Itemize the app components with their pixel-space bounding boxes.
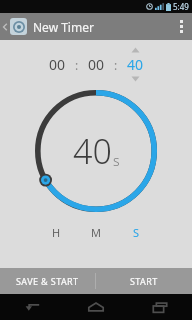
button[interactable]: H [46,223,66,241]
button[interactable]: Recent apps [128,294,192,320]
staticText: START [130,275,158,287]
button[interactable]: Timer dial, 40 seconds [33,88,159,214]
button[interactable]: 00 [83,47,109,82]
button[interactable]: START [96,268,192,294]
button[interactable]: SAVE & START [0,268,95,294]
staticText: SAVE & START [16,275,79,287]
button[interactable]: Home [64,294,128,320]
button[interactable]: 40 [122,47,148,82]
button[interactable]: Navigate up, New Timer [2,13,94,40]
staticText: s [113,151,120,170]
staticText: : [75,57,79,73]
button[interactable]: 00 [44,47,70,82]
staticText: : [114,57,118,73]
staticText: S [133,225,140,240]
staticText: 40 [127,55,144,74]
button[interactable]: S [126,223,146,241]
staticText: M [91,225,101,240]
staticText: 00 [88,55,105,74]
staticText: New Timer [33,19,94,35]
button[interactable]: M [86,223,106,241]
staticText: H [52,225,61,240]
button[interactable]: More options [170,13,192,40]
staticText: 5:49 [173,1,189,12]
staticText: 40 [73,128,112,174]
button[interactable]: Back [0,294,64,320]
staticText: 00 [49,55,66,74]
